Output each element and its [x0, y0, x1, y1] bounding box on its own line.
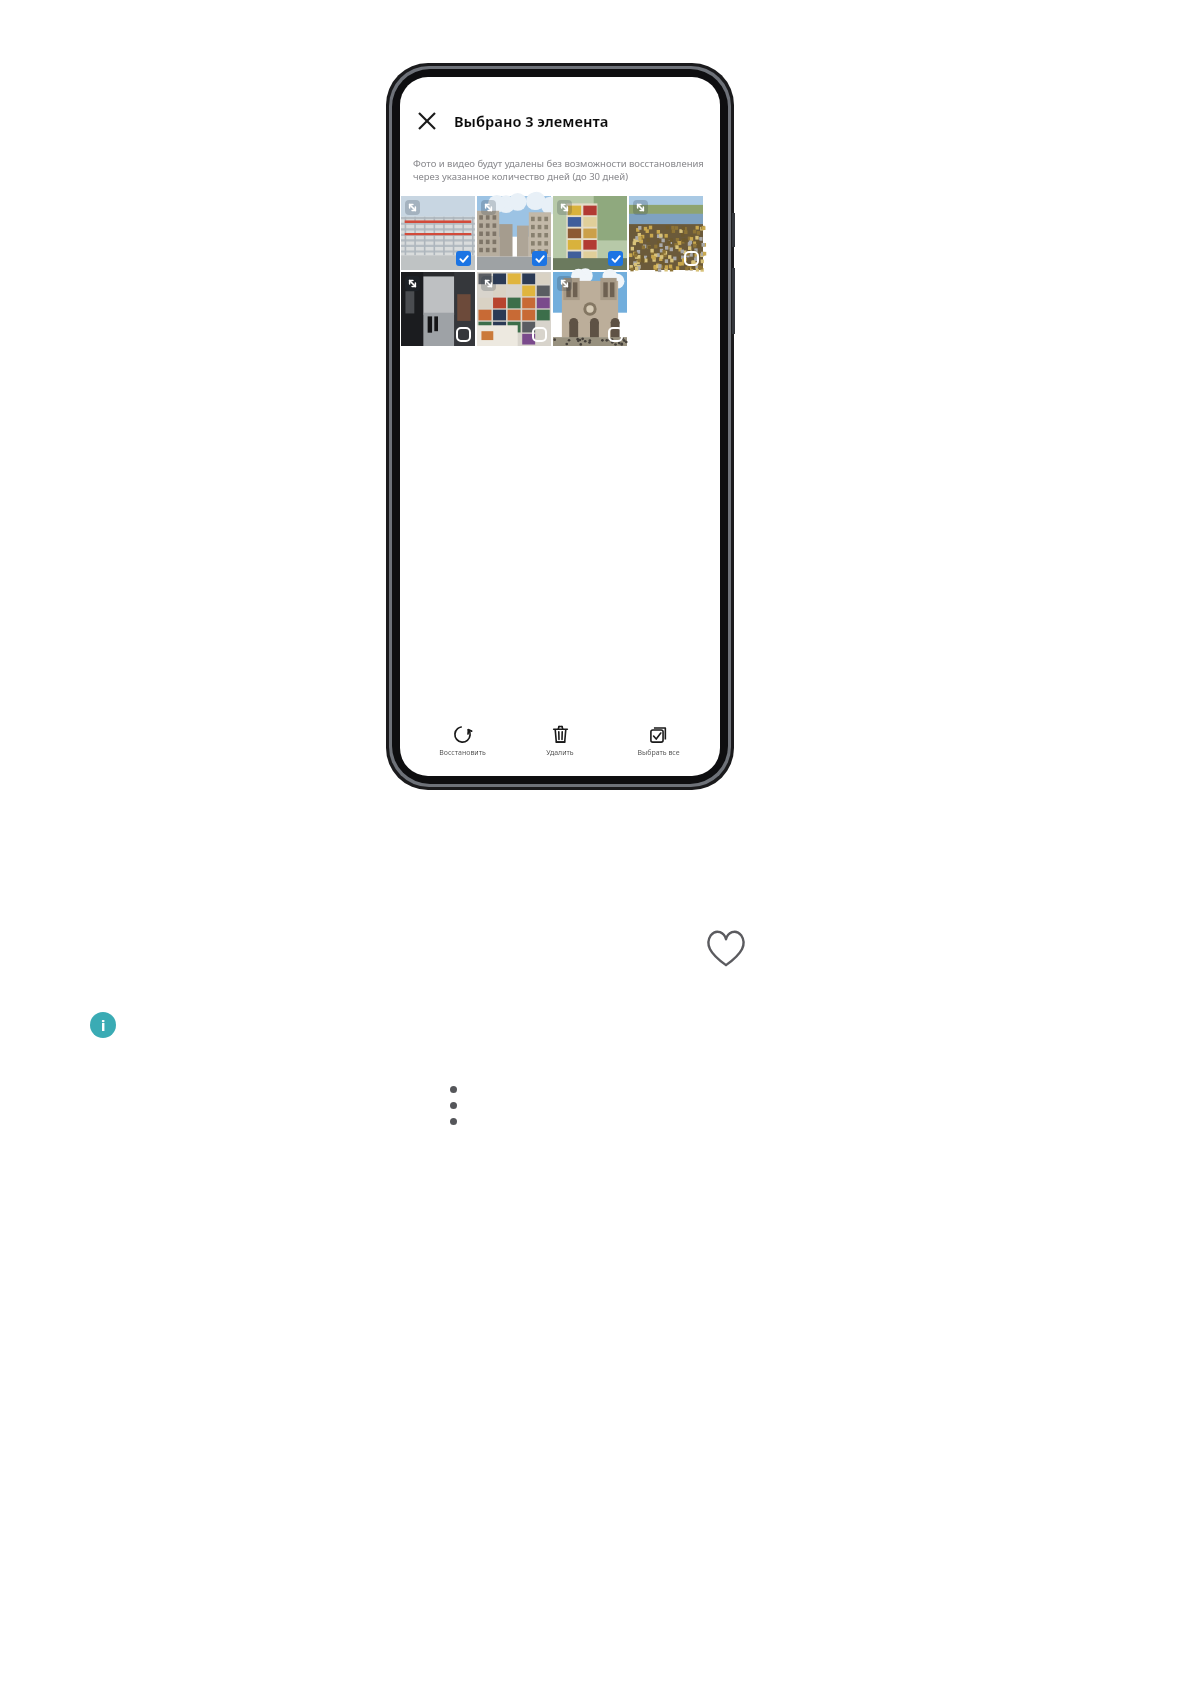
button[interactable]: Favourite: [700, 922, 752, 974]
staticText: i: [101, 1016, 106, 1035]
staticText: Выбрать все: [637, 748, 680, 758]
button[interactable]: Photo 2: [477, 196, 551, 270]
button[interactable]: Восстановить: [418, 723, 506, 760]
button[interactable]: Photo 5: [401, 272, 475, 346]
staticText: Фото и видео будут удалены без возможнос…: [413, 157, 707, 183]
button[interactable]: Удалить: [516, 723, 604, 760]
button[interactable]: Photo 3: [553, 196, 627, 270]
button[interactable]: Photo 1: [401, 196, 475, 270]
button[interactable]: More options: [450, 1086, 457, 1125]
staticText: Восстановить: [439, 748, 486, 758]
button[interactable]: Выбрать все: [614, 723, 702, 760]
staticText: Удалить: [546, 748, 574, 758]
button[interactable]: Photo 4: [629, 196, 703, 270]
button[interactable]: Information: [90, 1012, 116, 1038]
staticText: Выбрано 3 элемента: [454, 111, 609, 131]
button[interactable]: Close: [412, 106, 442, 136]
button[interactable]: Photo 7: [553, 272, 627, 346]
button[interactable]: Photo 6: [477, 272, 551, 346]
